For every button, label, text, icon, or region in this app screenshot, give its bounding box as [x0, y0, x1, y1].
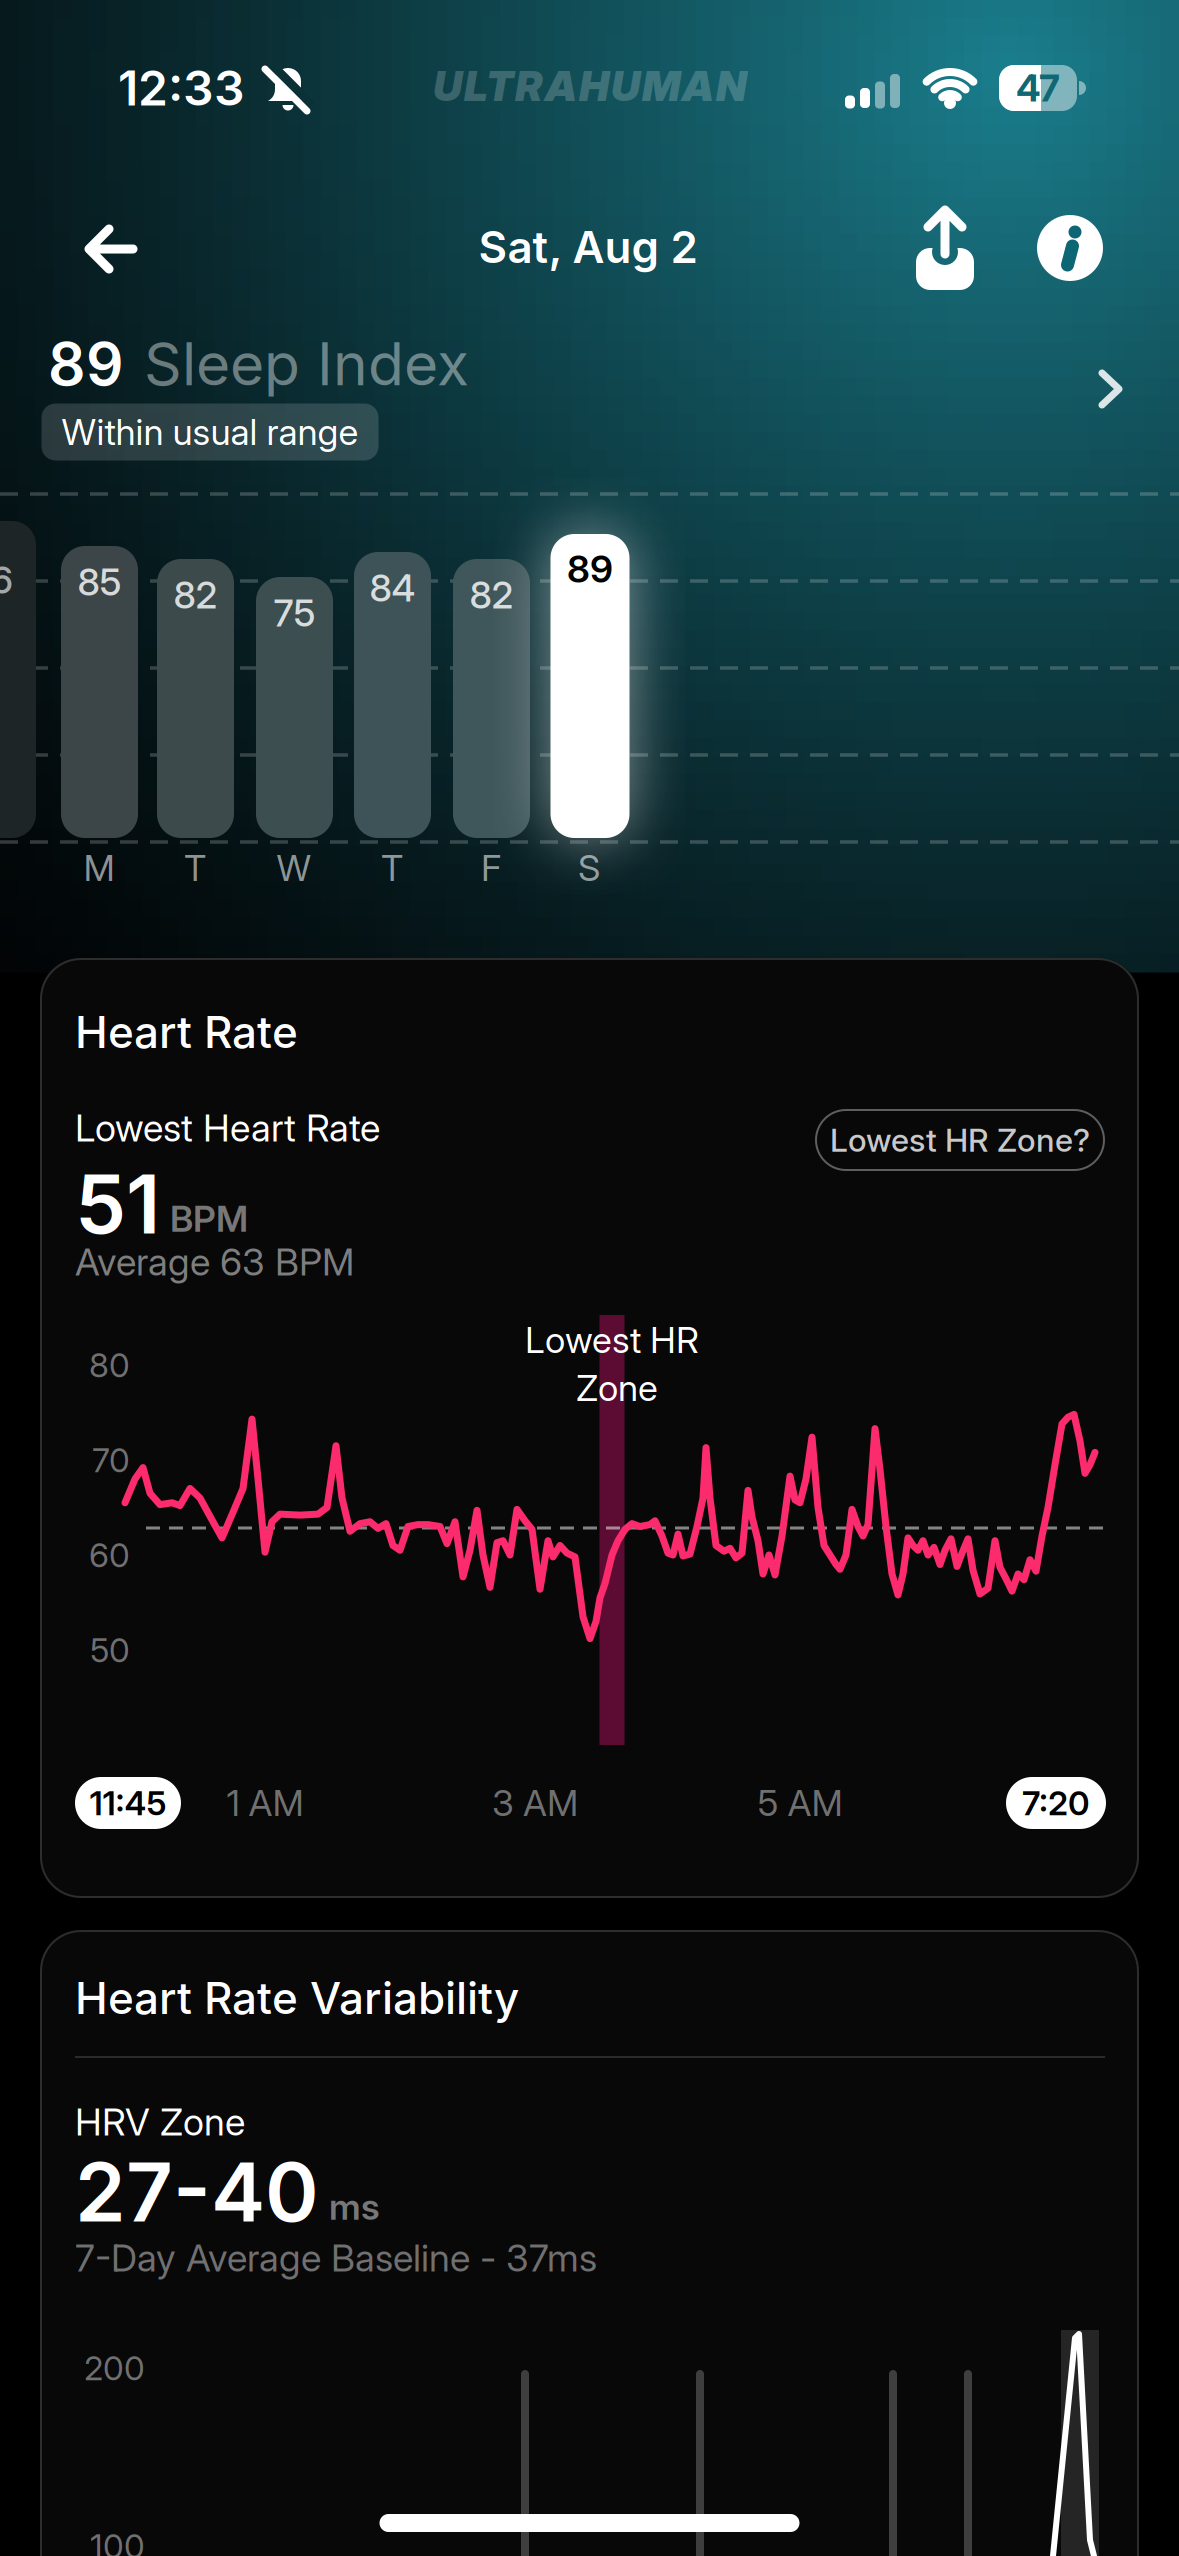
staticText: 200 — [84, 2348, 145, 2388]
staticText: 50 — [90, 1630, 130, 1670]
staticText: T — [184, 847, 206, 889]
button[interactable]: Sleep index 75 — [256, 577, 333, 838]
button[interactable]: Sleep index 89, Saturday — [550, 534, 629, 838]
staticText: 82 — [173, 573, 217, 617]
button[interactable]: Sleep Index 89, within usual range — [0, 330, 1179, 480]
button[interactable]: Back — [83, 223, 137, 275]
staticText: 60 — [89, 1535, 130, 1575]
staticText: 3 AM — [492, 1782, 578, 1824]
staticText: Within usual range — [61, 411, 358, 453]
button[interactable]: Share — [914, 206, 976, 290]
button[interactable]: Sleep index 82 — [157, 559, 234, 838]
staticText: ULTRAHUMAN — [433, 62, 747, 110]
staticText: 5 AM — [757, 1782, 842, 1824]
staticText: 7-Day Average Baseline - 37ms — [75, 2236, 597, 2280]
button[interactable]: Info — [1037, 215, 1103, 281]
staticText: 85 — [77, 560, 121, 604]
staticText: Heart Rate — [75, 1006, 298, 1058]
staticText: M — [83, 847, 114, 889]
staticText: Average 63 BPM — [75, 1240, 354, 1284]
staticText: Lowest HR — [525, 1319, 699, 1361]
button[interactable]: Sleep index 85 — [61, 546, 138, 838]
staticText: 11:45 — [89, 1783, 166, 1823]
staticText: Sleep Index — [144, 329, 469, 399]
staticText: 80 — [89, 1345, 130, 1385]
staticText: HRV Zone — [75, 2100, 245, 2144]
button[interactable]: Lowest HR Zone info — [815, 1109, 1105, 1171]
staticText: 7:20 — [1022, 1783, 1090, 1823]
staticText: 47 — [1016, 66, 1060, 110]
staticText: Lowest HR Zone? — [830, 1121, 1090, 1159]
staticText: 12:33 — [118, 60, 245, 116]
staticText: 84 — [369, 566, 415, 610]
staticText: S — [578, 847, 600, 889]
button[interactable]: Sleep index 84 — [354, 552, 431, 838]
staticText: Zone — [576, 1367, 658, 1409]
staticText: Sat, Aug 2 — [478, 221, 697, 273]
staticText: BPM — [170, 1197, 248, 1240]
staticText: T — [381, 847, 403, 889]
staticText: 27-40 — [75, 2144, 319, 2240]
staticText: 75 — [273, 591, 315, 635]
staticText: F — [481, 847, 501, 889]
button[interactable]: Sleep index 82 — [453, 559, 530, 838]
staticText: ms — [329, 2185, 380, 2228]
staticText: 100 — [90, 2526, 145, 2556]
staticText: 70 — [92, 1440, 130, 1480]
staticText: 82 — [469, 573, 513, 617]
staticText: W — [276, 847, 311, 889]
staticText: 89 — [48, 329, 124, 399]
staticText: 6 — [0, 558, 13, 602]
staticText: 89 — [567, 547, 613, 591]
staticText: 51 — [75, 1156, 160, 1252]
staticText: 1 AM — [226, 1782, 303, 1824]
staticText: Lowest Heart Rate — [75, 1106, 380, 1150]
staticText: Heart Rate Variability — [75, 1972, 519, 2024]
